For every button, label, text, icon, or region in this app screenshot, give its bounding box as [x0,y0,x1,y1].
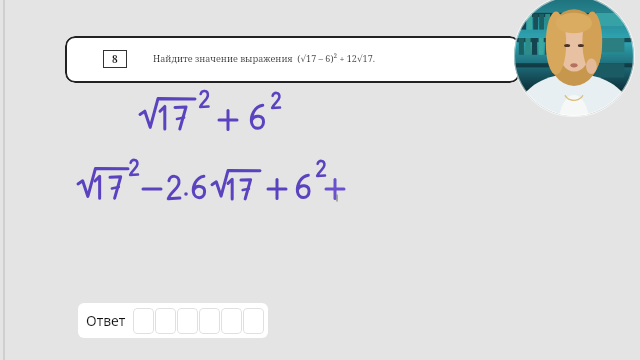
button[interactable]: Answer digit cell [221,308,242,334]
staticText: Найдите значение выражения (√17 – 6)² + … [153,52,375,64]
button[interactable]: Answer digit cell [177,308,198,334]
button[interactable]: 8 [65,36,520,83]
button[interactable]: Answer digit cell [133,308,154,334]
button[interactable]: Answer digit cell [199,308,220,334]
button[interactable]: Ответ [78,303,268,338]
button[interactable]: Answer digit cell [155,308,176,334]
staticText: Ответ [86,311,126,330]
button[interactable]: Answer digit cell [243,308,264,334]
staticText: 8 [112,52,118,66]
button[interactable]: Presenter webcam [512,0,636,118]
